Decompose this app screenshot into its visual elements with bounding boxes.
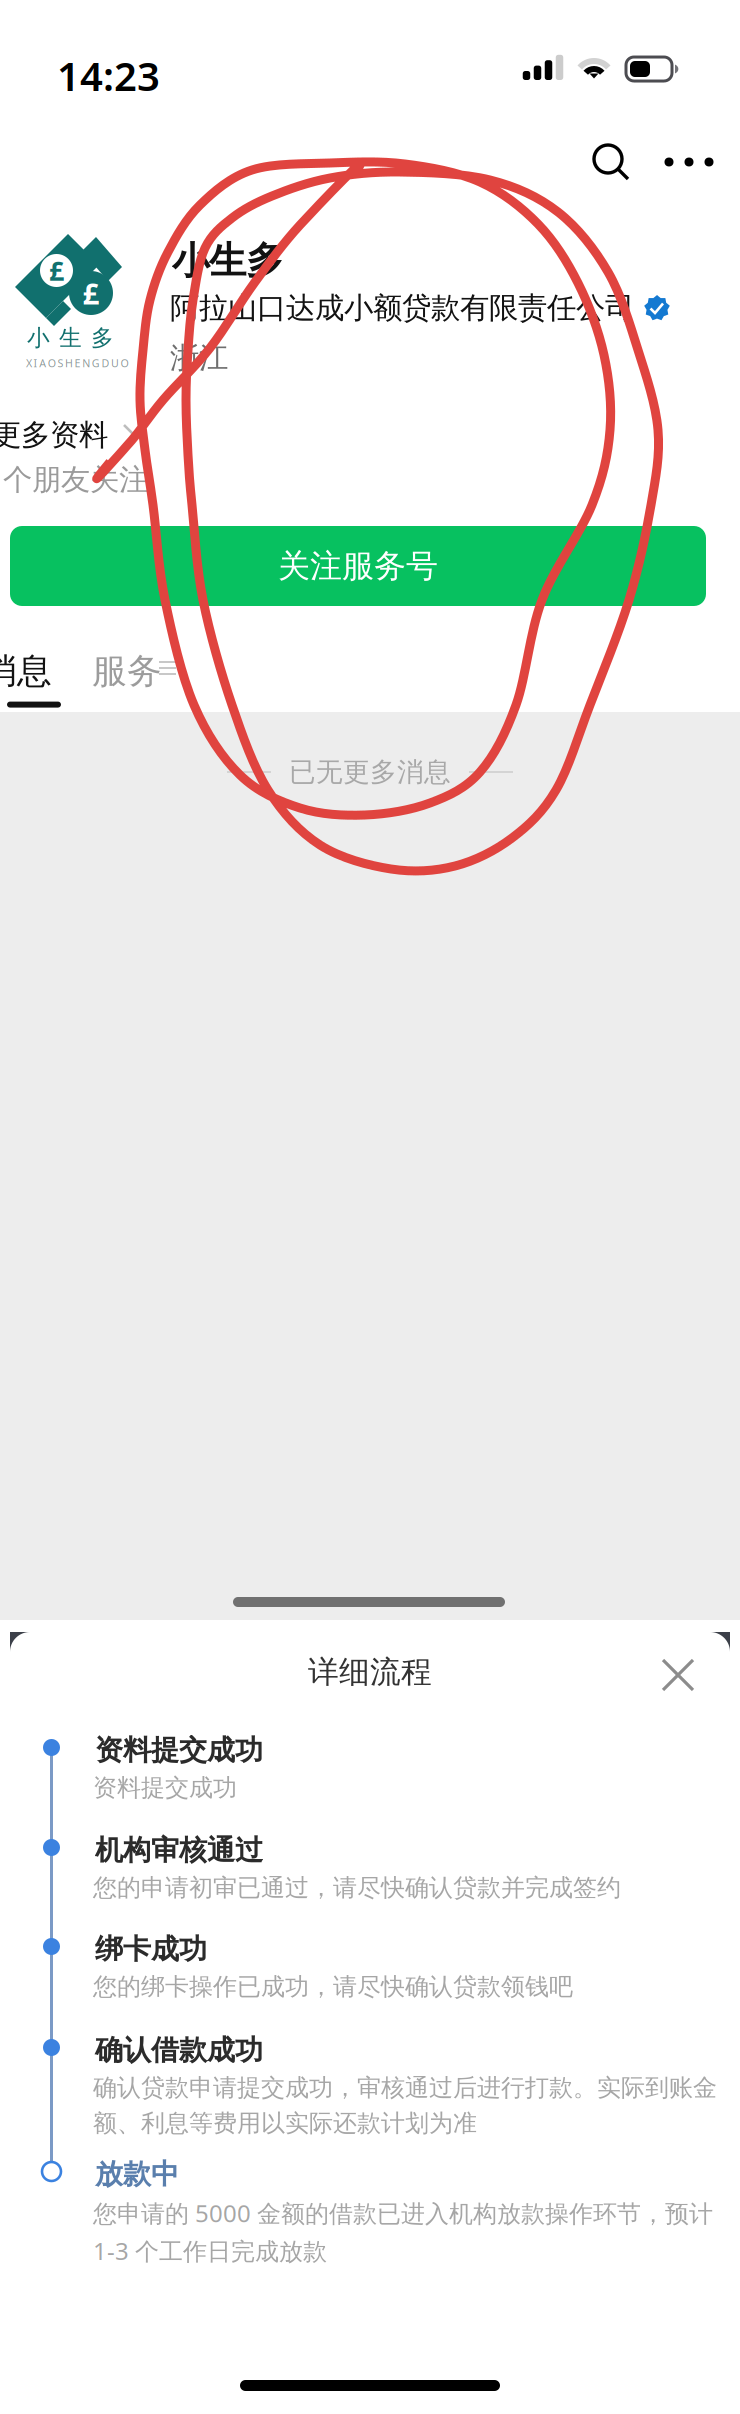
staticText: 小生多 xyxy=(172,238,283,284)
staticText: 14:23 xyxy=(57,49,160,102)
staticText: 小 xyxy=(27,324,50,352)
staticText: £ xyxy=(49,253,64,288)
staticText: 关注服务号 xyxy=(278,546,438,586)
staticText: 多 xyxy=(91,324,114,352)
staticText: 1-3 个工作日完成放款 xyxy=(93,2235,327,2267)
staticText: H xyxy=(65,356,73,370)
staticText: N xyxy=(82,356,90,370)
staticText: 您的绑卡操作已成功，请尽快确认贷款领钱吧 xyxy=(93,1972,573,2001)
staticText: 消息 xyxy=(0,650,52,693)
staticText: 已无更多消息 xyxy=(289,756,451,788)
staticText: 额、利息等费用以实际还款计划为准 xyxy=(93,2108,477,2138)
button[interactable]: More xyxy=(668,143,710,181)
staticText: O xyxy=(121,356,129,370)
staticText: 放款中 xyxy=(95,2157,179,2191)
button[interactable]: 关注服务号 xyxy=(10,526,706,606)
staticText: D xyxy=(101,356,109,370)
staticText: £ xyxy=(82,273,99,312)
button[interactable]: 消息 xyxy=(0,650,52,708)
staticText: 资料提交成功 xyxy=(95,1733,263,1767)
button[interactable]: Close xyxy=(661,1658,695,1692)
staticText: A xyxy=(39,356,46,370)
staticText: 确认贷款申请提交成功，审核通过后进行打款。实际到账金 xyxy=(93,2073,717,2102)
button[interactable]: 服务 xyxy=(92,650,162,693)
staticText: 您的申请初审已通过，请尽快确认贷款并完成签约 xyxy=(93,1873,621,1902)
button[interactable]: 更多资料 xyxy=(0,417,136,453)
staticText: X xyxy=(26,356,32,370)
staticText: 更多资料 xyxy=(0,417,108,453)
staticText: 您申请的 5000 金额的借款已进入机构放款操作环节，预计 xyxy=(93,2197,713,2229)
staticText: 机构审核通过 xyxy=(95,1833,263,1867)
button[interactable]: Search xyxy=(592,143,630,181)
staticText: O xyxy=(48,356,56,370)
staticText: G xyxy=(92,356,100,370)
staticText: 资料提交成功 xyxy=(93,1773,237,1802)
staticText: E xyxy=(75,356,81,370)
staticText: S xyxy=(57,356,63,370)
staticText: 详细流程 xyxy=(308,1653,432,1691)
staticText: 生 xyxy=(59,324,82,352)
staticText: 确认借款成功 xyxy=(95,2033,263,2067)
staticText: 1个朋友关注 xyxy=(0,459,148,498)
staticText: 浙江 xyxy=(170,340,228,376)
staticText: U xyxy=(111,356,119,370)
staticText: 服务 xyxy=(92,650,162,693)
staticText: 阿拉山口达成小额贷款有限责任公司 xyxy=(170,290,634,326)
staticText: 绑卡成功 xyxy=(95,1932,207,1966)
staticText: I xyxy=(34,356,38,370)
